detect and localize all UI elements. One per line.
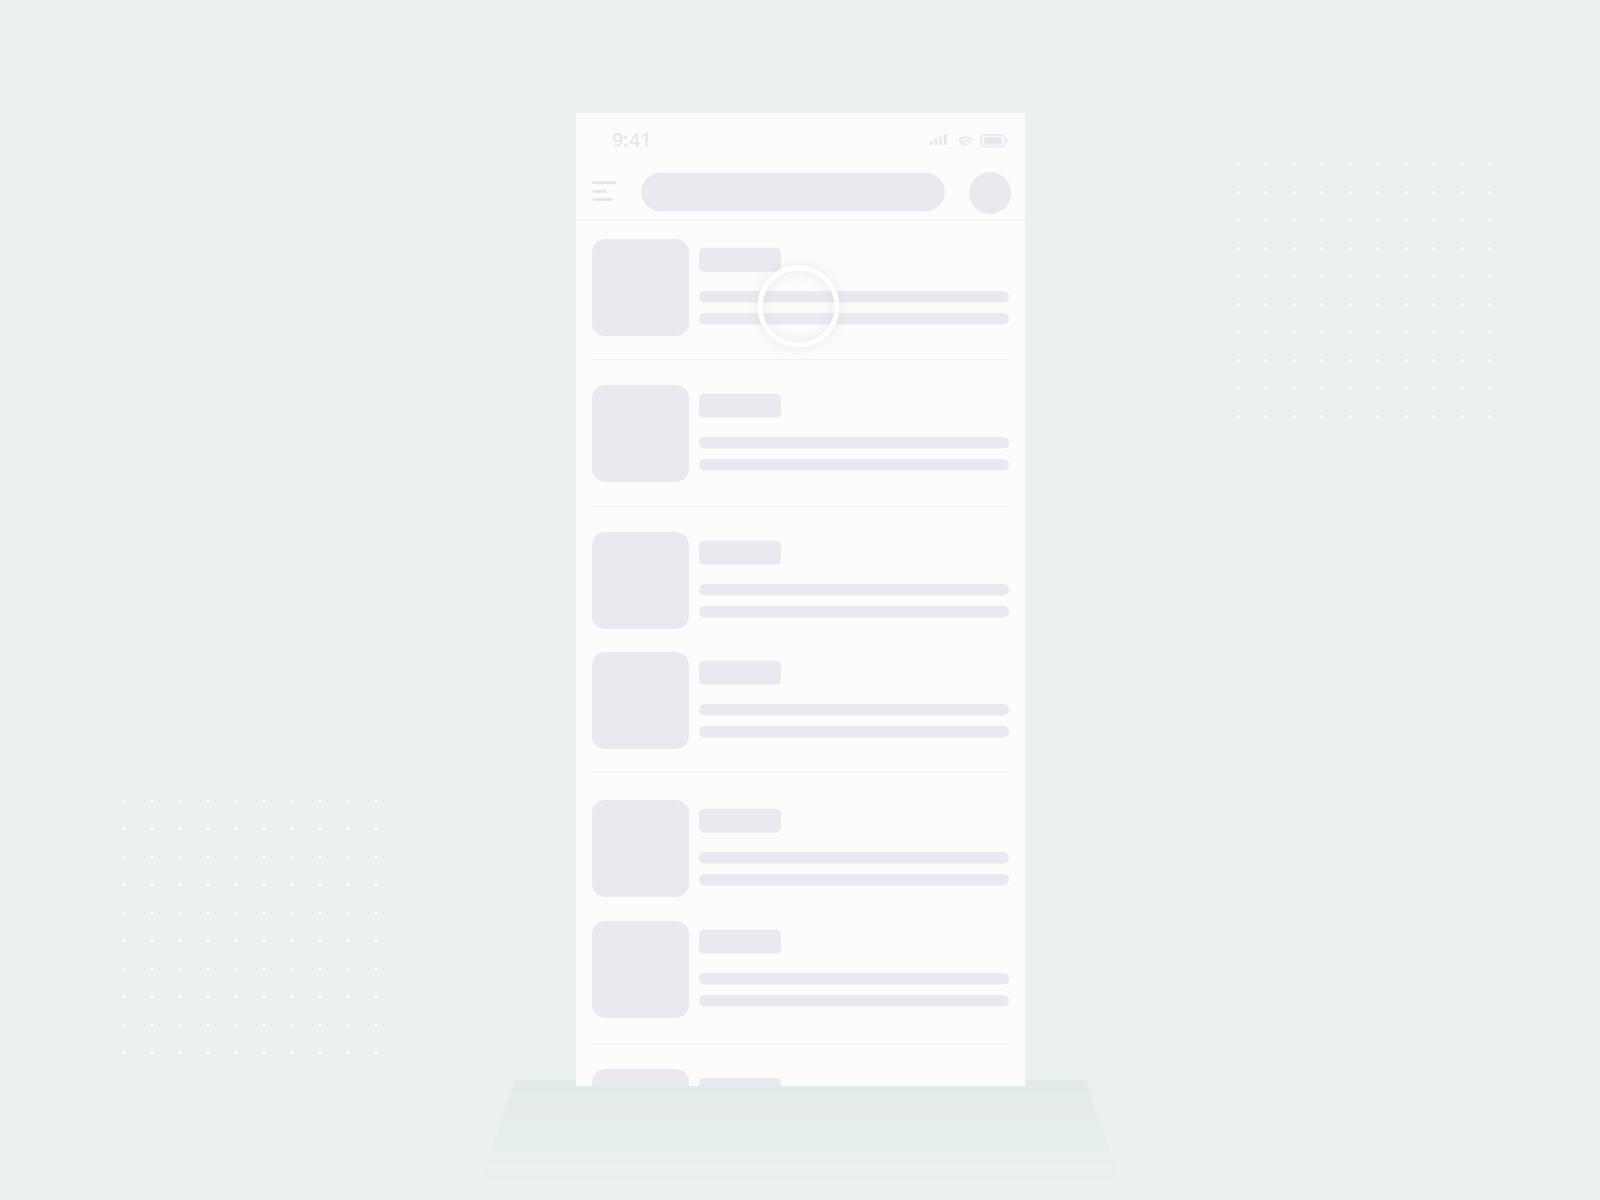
button[interactable]: Profile xyxy=(969,172,1011,214)
staticText: 9:41 xyxy=(612,126,651,153)
button[interactable]: Menu xyxy=(582,169,626,213)
